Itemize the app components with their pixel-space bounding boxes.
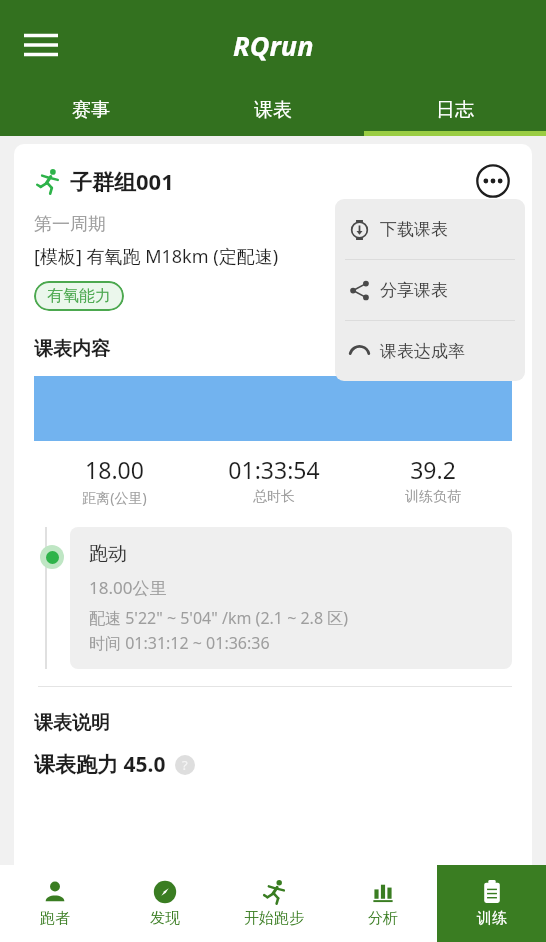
button[interactable]: 开始跑步 (219, 865, 328, 942)
button[interactable]: Menu (12, 16, 70, 74)
staticText: 课表内容 (34, 337, 110, 361)
staticText: 开始跑步 (244, 909, 304, 928)
staticText: 分享课表 (380, 280, 448, 301)
staticText: 配速 5'22" ~ 5'04" /km (2.1 ~ 2.8 区) (89, 607, 348, 629)
button[interactable]: 分享课表 (335, 260, 525, 320)
button[interactable]: 日志 (364, 89, 546, 131)
staticText: 训练负荷 (405, 488, 461, 506)
staticText: 总时长 (253, 488, 295, 506)
staticText: [模板] 有氧跑 M18km (定配速) (34, 244, 279, 269)
staticText: 18.00 (85, 454, 144, 485)
staticText: 01:33:54 (228, 454, 320, 485)
staticText: 跑动 (89, 542, 127, 566)
staticText: 赛事 (72, 98, 110, 122)
staticText: 课表 (254, 98, 292, 122)
staticText: 训练 (477, 909, 507, 928)
staticText: 第一周期 (34, 213, 106, 236)
staticText: 跑者 (40, 909, 70, 928)
staticText: 子群组001 (70, 166, 174, 196)
staticText: 日志 (436, 98, 474, 122)
staticText: 39.2 (410, 454, 456, 485)
button[interactable]: 发现 (110, 865, 219, 942)
staticText: 课表跑力 45.0 (34, 750, 166, 779)
staticText: 发现 (150, 909, 180, 928)
staticText: 分析 (368, 909, 398, 928)
staticText: 有氧能力 (47, 286, 111, 306)
staticText: 下载课表 (380, 219, 448, 240)
staticText: 距离(公里) (82, 488, 147, 507)
button[interactable]: 分析 (328, 865, 437, 942)
button[interactable]: 课表 (182, 89, 364, 131)
staticText: 时间 01:31:12 ~ 01:36:36 (89, 632, 270, 654)
staticText: 课表达成率 (380, 341, 465, 362)
button[interactable]: Help (175, 755, 195, 775)
staticText: RQrun (233, 27, 314, 64)
button[interactable]: 跑者 (0, 865, 110, 942)
staticText: 18.00公里 (89, 576, 167, 599)
button[interactable]: 跑动 (70, 527, 512, 669)
button[interactable]: 训练 (437, 865, 546, 942)
staticText: ? (182, 756, 188, 774)
button[interactable]: More options (474, 162, 512, 200)
button[interactable]: 课表达成率 (335, 321, 525, 381)
staticText: 课表说明 (34, 711, 110, 735)
button[interactable]: 下载课表 (335, 199, 525, 259)
button[interactable]: 有氧能力 (34, 281, 124, 311)
button[interactable]: 赛事 (0, 89, 182, 131)
